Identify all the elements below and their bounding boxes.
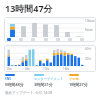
staticText: 10時間 <box>85 19 95 23</box>
button[interactable]: 60分 <box>4 45 96 72</box>
staticText: 3時間21分 <box>34 82 53 87</box>
staticText: 5時間48分 <box>5 82 24 87</box>
button[interactable]: Day 6 <box>68 38 72 41</box>
button[interactable]: Day 7 <box>80 38 84 41</box>
button[interactable]: 10時間 <box>4 17 96 42</box>
button[interactable]: その他 <box>68 74 96 87</box>
staticText: 1時間27分 <box>69 82 88 87</box>
staticText: 30分 <box>85 57 92 61</box>
button[interactable]: Day 3 <box>31 38 35 41</box>
button[interactable]: Day 5 <box>56 38 60 41</box>
button[interactable]: エンターテイメント <box>33 74 68 87</box>
staticText: SNS <box>5 77 11 81</box>
button[interactable]: Day 2 <box>19 38 23 41</box>
staticText: 最終アップデート: 今日 14:38 <box>5 90 53 95</box>
staticText: その他 <box>69 77 79 81</box>
staticText: 0時 <box>7 67 12 71</box>
button[interactable]: SNS <box>4 74 33 87</box>
staticText: 6時 <box>25 67 30 71</box>
button[interactable]: Day 4 <box>44 38 48 41</box>
staticText: 12時 <box>43 67 50 71</box>
staticText: 60分 <box>85 47 92 51</box>
staticText: 5時間 <box>85 28 93 32</box>
button[interactable]: Day 1 <box>7 38 11 41</box>
staticText: 13時間47分 <box>5 2 53 14</box>
staticText: エンターテイメント <box>34 77 64 81</box>
staticText: 18時 <box>63 67 70 71</box>
